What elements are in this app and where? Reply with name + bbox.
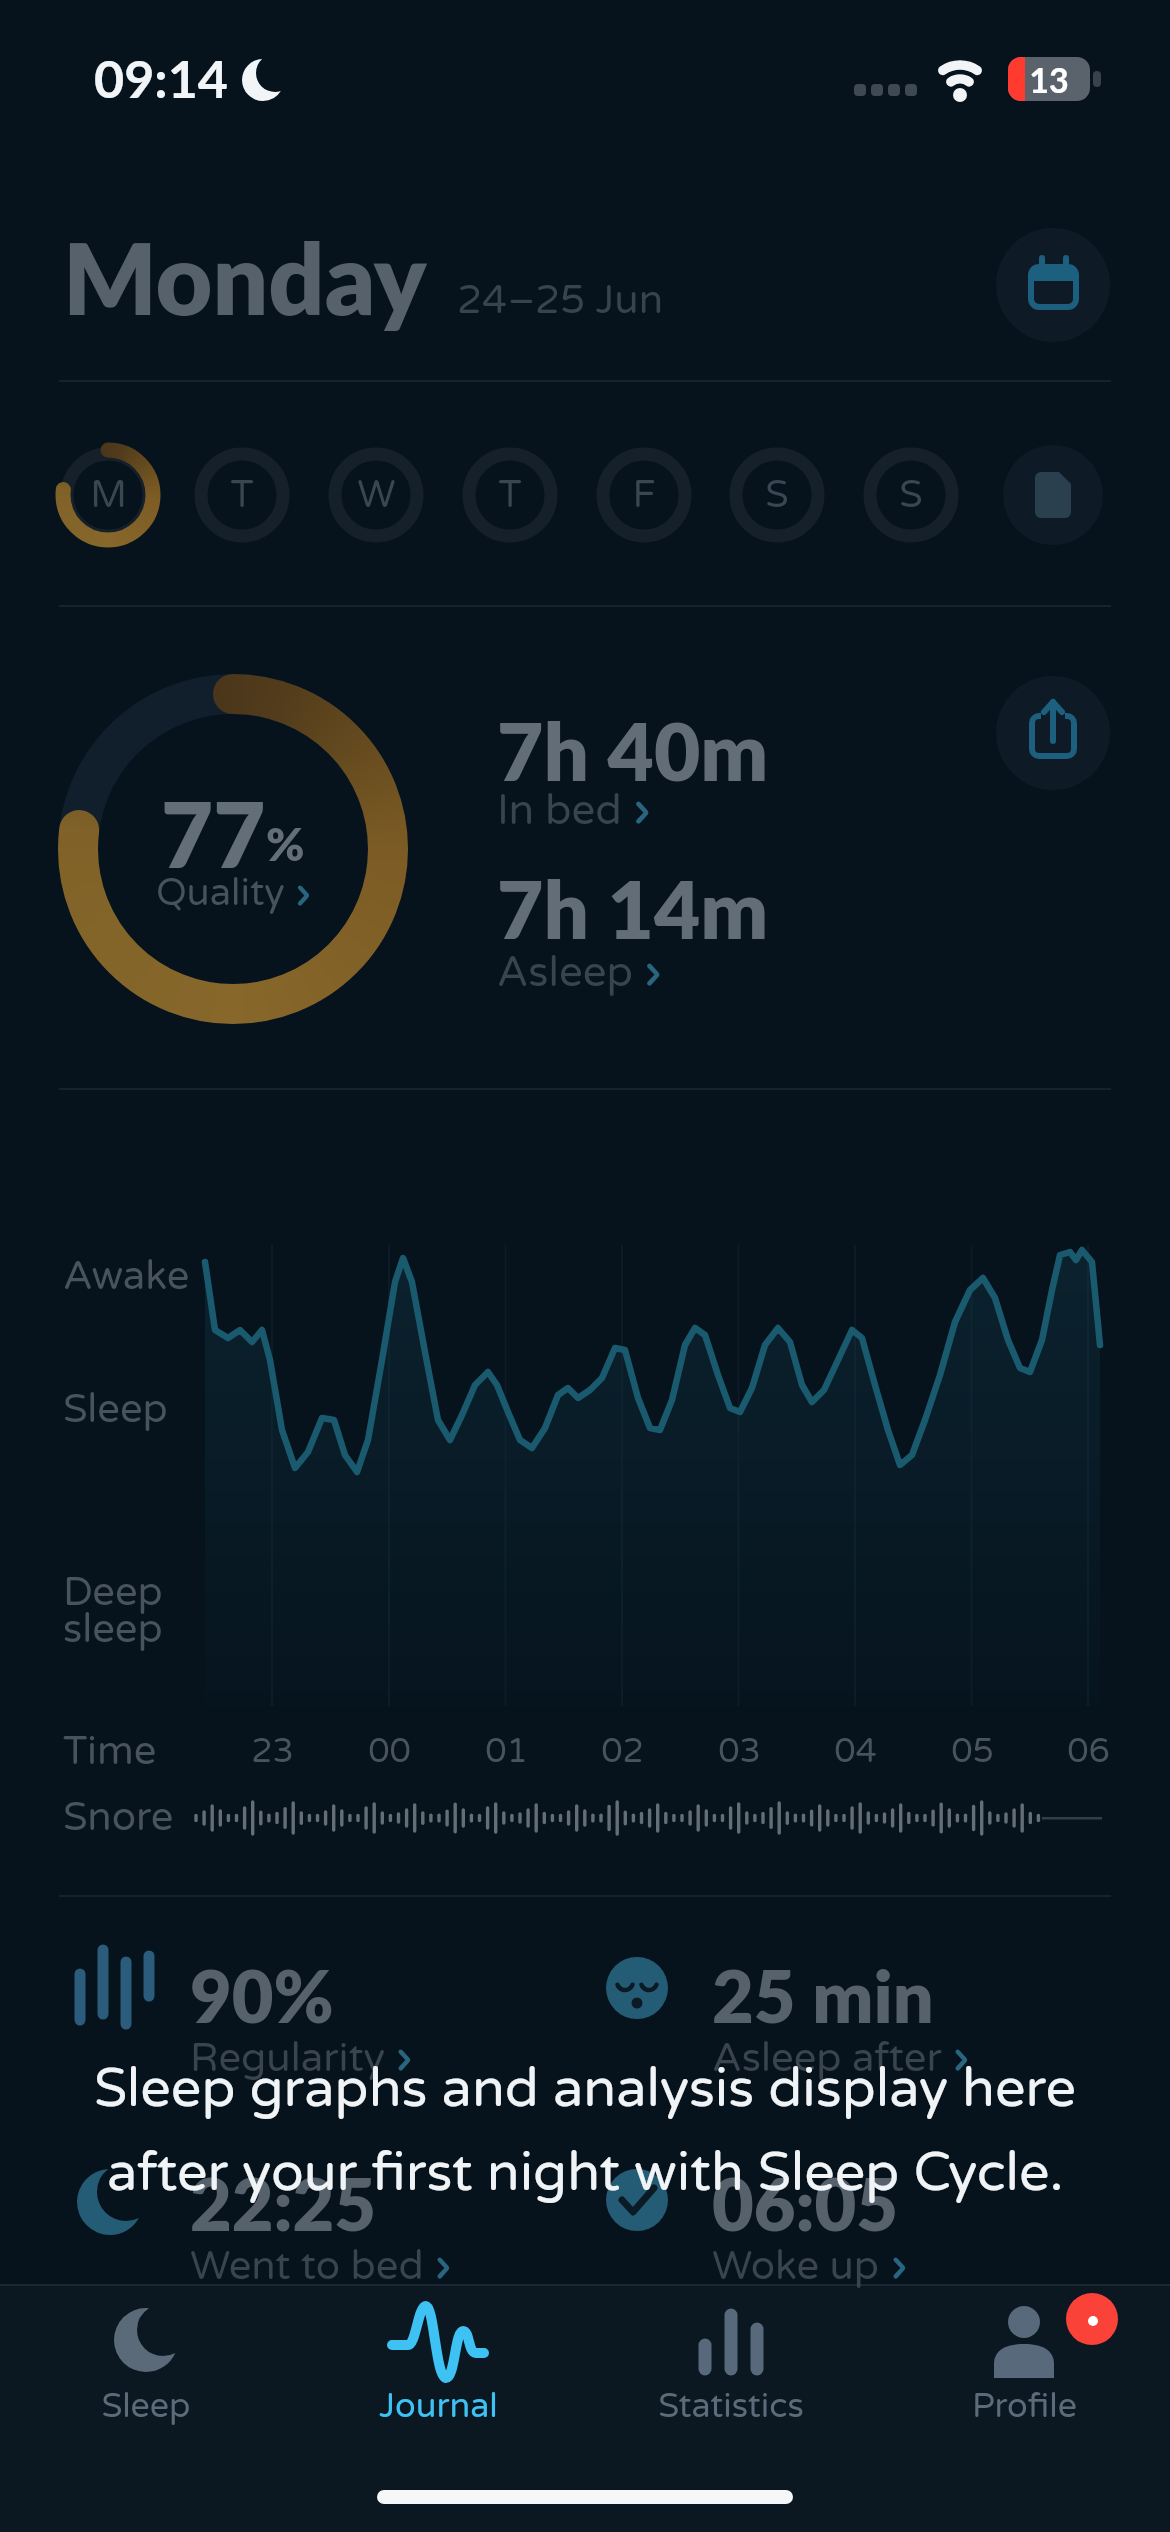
staticText: Monday [63,218,427,336]
button[interactable] [63,450,153,540]
staticText: S [899,472,923,518]
staticText: 22:25 [190,2160,377,2246]
staticText: 06:05 [712,2160,899,2246]
staticText: 90% [190,1952,334,2038]
button[interactable] [599,450,689,540]
staticText: › [285,869,311,917]
staticText: 00 [368,1731,411,1772]
staticText: Sleep graphs and analysis display here [94,2056,1076,2121]
staticText: 06 [1067,1731,1110,1772]
button[interactable]: Went to bed [190,2240,451,2291]
button[interactable] [26,2290,266,2440]
staticText: F [632,472,656,518]
button[interactable] [611,2290,851,2440]
staticText: after your first night with Sleep Cycle. [107,2140,1064,2205]
staticText: sleep [63,1605,163,1653]
staticText: Asleep [497,947,633,998]
staticText: Journal [379,2386,498,2427]
staticText: 03 [718,1731,761,1772]
staticText: 13 [1029,59,1069,100]
staticText: 7h 14m [497,860,769,956]
button[interactable] [331,450,421,540]
staticText: 04 [834,1731,877,1772]
staticText: W [357,472,396,518]
staticText: Statistics [658,2386,804,2427]
staticText: T [498,472,522,518]
button[interactable]: Woke up [712,2240,907,2291]
staticText: T [230,472,254,518]
button[interactable] [996,228,1110,342]
button[interactable] [904,2290,1144,2440]
staticText: Deep [63,1568,163,1616]
staticText: › [633,946,662,999]
button[interactable]: Quality [123,868,343,918]
staticText: 09:14 [94,47,229,109]
staticText: Sleep [101,2386,191,2427]
staticText: Time [63,1727,157,1775]
staticText: Snore [63,1793,174,1841]
staticText: Profile [972,2386,1077,2427]
staticText: Sleep [63,1385,168,1433]
staticText: Went to bed [190,2242,424,2290]
staticText: S [765,472,789,518]
button[interactable]: Asleep [497,946,662,999]
staticText: 77 [161,779,266,879]
staticText: % [266,816,305,871]
button[interactable] [996,676,1110,790]
staticText: Woke up [712,2242,880,2290]
button[interactable]: Regularity [190,2032,412,2083]
staticText: 02 [601,1731,644,1772]
staticText: In bed [497,785,622,836]
button[interactable] [197,450,287,540]
staticText: Quality [156,870,285,916]
staticText: M [90,472,127,518]
staticText: 25 min [712,1952,934,2038]
staticText: 01 [485,1731,528,1772]
button[interactable]: In bed [497,784,651,837]
staticText: › [424,2240,451,2291]
button[interactable] [866,450,956,540]
staticText: › [622,784,651,837]
button[interactable] [732,450,822,540]
staticText: Regularity [190,2034,385,2082]
button[interactable]: Asleep after [712,2032,969,2083]
staticText: 24–25 Jun [457,276,663,324]
staticText: › [880,2240,907,2291]
button[interactable] [1003,445,1103,545]
staticText: 05 [951,1731,994,1772]
staticText: › [385,2032,412,2083]
staticText: Asleep after [712,2034,942,2082]
staticText: Awake [63,1252,190,1300]
staticText: › [942,2032,969,2083]
button[interactable] [465,450,555,540]
staticText: 23 [251,1731,294,1772]
staticText: 7h 40m [497,702,769,798]
button[interactable] [318,2290,558,2440]
